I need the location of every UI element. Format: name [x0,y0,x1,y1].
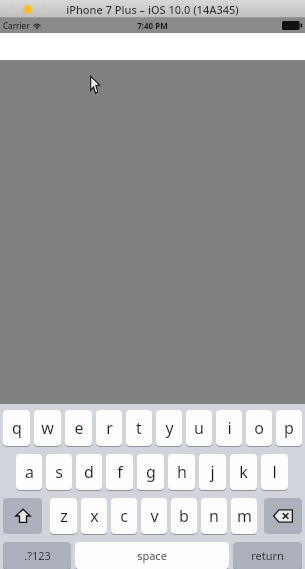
staticText: 7:40 PM [137,20,168,31]
button[interactable]: m [231,498,257,534]
staticText: iPhone 7 Plus – iOS 10.0 (14A345) [66,2,239,17]
staticText: i [227,417,232,439]
button[interactable]: g [137,454,164,490]
staticText: x [90,505,99,527]
button[interactable]: y [156,410,182,446]
button[interactable]: Backspace [264,498,302,534]
staticText: k [239,461,248,483]
staticText: a [25,461,34,483]
staticText: m [237,505,252,527]
staticText: return [251,548,284,563]
button[interactable]: return [233,542,302,569]
staticText: .?123 [24,548,51,563]
staticText: r [106,417,113,439]
button[interactable]: p [276,410,302,446]
staticText: h [177,461,187,483]
button[interactable]: t [126,410,152,446]
button[interactable]: s [46,454,72,490]
button[interactable]: d [76,454,102,490]
button[interactable]: c [111,498,137,534]
button[interactable]: x [81,498,107,534]
staticText: u [194,417,204,439]
staticText: n [209,505,219,527]
staticText: Carrier [3,20,30,31]
button[interactable]: e [65,410,92,446]
button[interactable]: b [171,498,197,534]
staticText: o [254,417,264,439]
staticText: v [150,505,159,527]
button[interactable]: h [168,454,195,490]
button[interactable]: j [199,454,226,490]
staticText: p [284,417,294,439]
staticText: w [41,417,54,439]
staticText: c [120,505,128,527]
button[interactable]: n [201,498,227,534]
staticText: e [74,417,84,439]
staticText: q [12,417,22,439]
button[interactable]: o [246,410,272,446]
button[interactable]: l [261,454,288,490]
button[interactable]: v [141,498,167,534]
staticText: d [84,461,94,483]
button[interactable]: q [3,410,30,446]
button[interactable]: Shift [3,498,42,534]
button[interactable]: u [186,410,212,446]
staticText: g [146,461,156,483]
button[interactable]: r [96,410,122,446]
button[interactable]: k [230,454,257,490]
button[interactable]: .?123 [3,542,71,569]
button[interactable]: i [216,410,242,446]
staticText: t [136,417,142,439]
staticText: l [272,461,277,483]
staticText: f [117,461,123,483]
button[interactable]: Window button [23,5,32,14]
staticText: z [60,505,68,527]
button[interactable]: space [75,542,229,569]
button[interactable]: z [50,498,77,534]
button[interactable]: w [34,410,61,446]
staticText: j [210,461,215,483]
staticText: y [165,417,174,439]
staticText: space [137,548,167,563]
button[interactable]: a [16,454,42,490]
staticText: s [55,461,63,483]
button[interactable]: f [106,454,133,490]
staticText: b [179,505,189,527]
